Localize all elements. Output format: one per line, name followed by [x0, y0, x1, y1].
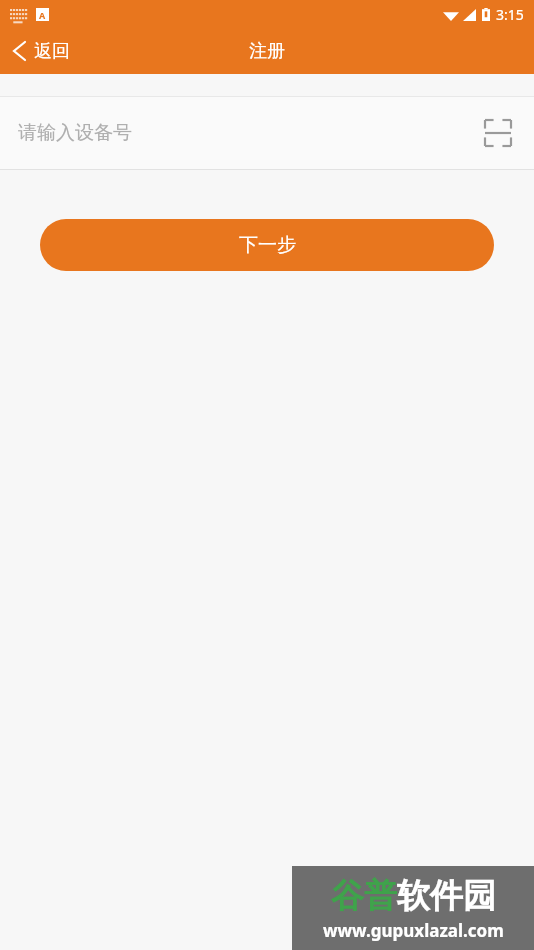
staticText: 3:15: [496, 5, 524, 24]
staticText: 下一步: [239, 233, 296, 257]
staticText: 注册: [249, 40, 285, 63]
staticText: A: [39, 9, 46, 21]
staticText: www.gupuxlazal.com: [323, 919, 504, 942]
button[interactable]: 下一步: [40, 219, 494, 271]
staticText: 谷普: [331, 875, 397, 917]
staticText: 返回: [34, 40, 70, 63]
staticText: 请输入设备号: [18, 121, 478, 145]
button[interactable]: Scan QR code: [478, 113, 518, 153]
button[interactable]: 请输入设备号: [0, 97, 534, 169]
staticText: 软件园: [397, 875, 496, 917]
button[interactable]: 返回: [0, 28, 176, 74]
